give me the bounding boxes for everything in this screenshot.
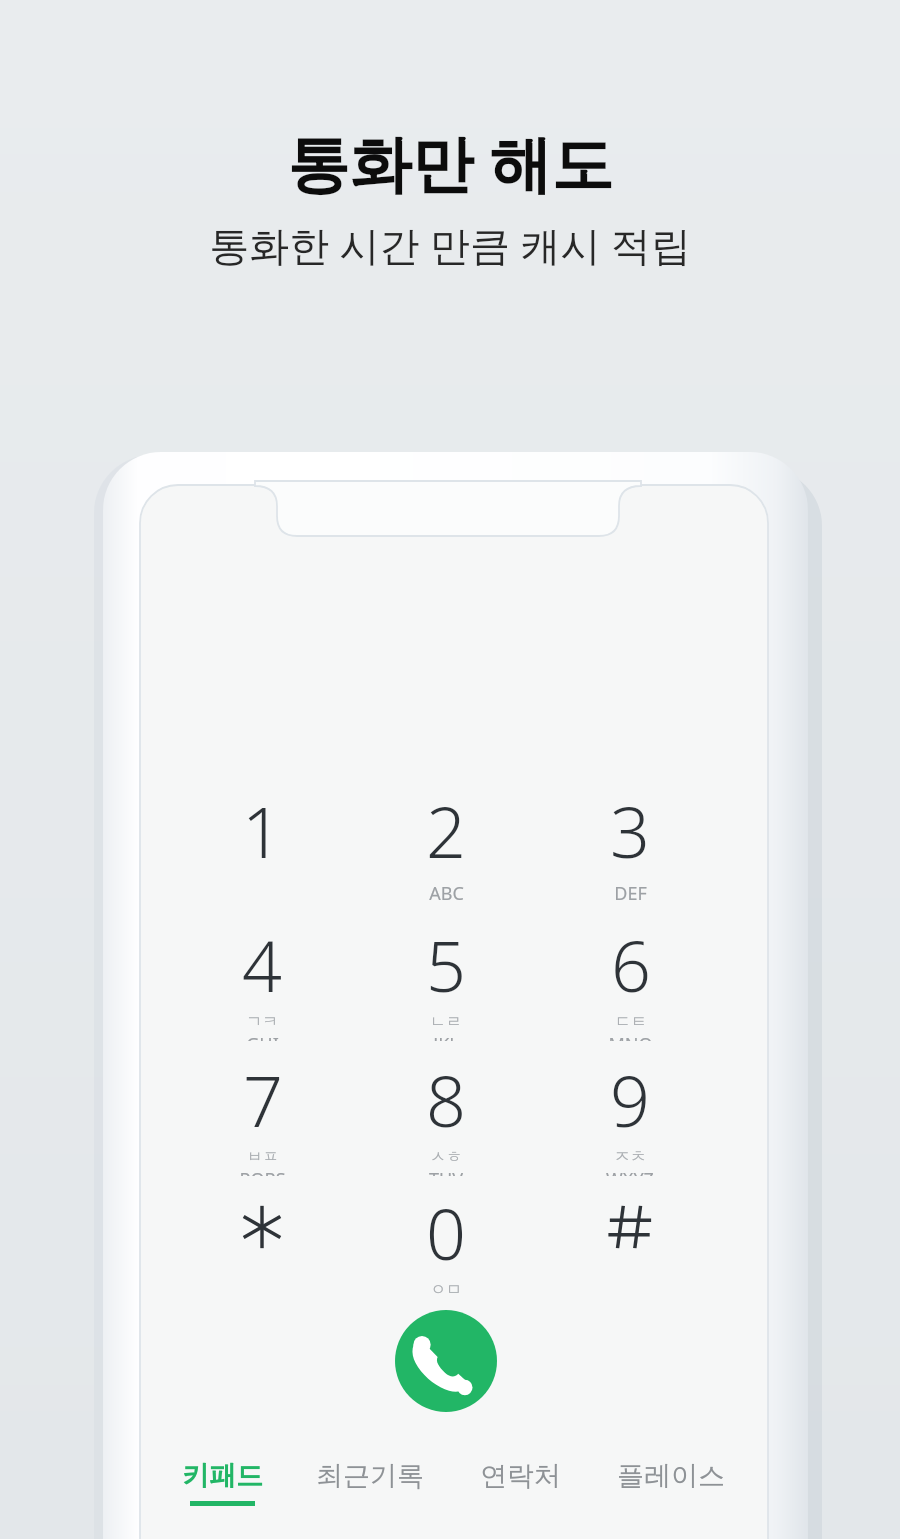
staticText: 0 [426, 1185, 466, 1280]
staticText: GHI [246, 1032, 279, 1041]
button[interactable]: 5 [371, 917, 521, 1041]
staticText: ㅂㅍ [247, 1147, 279, 1167]
staticText: 2 [426, 783, 466, 878]
staticText: 7 [243, 1052, 283, 1147]
staticText: 연락처 [480, 1459, 561, 1493]
button[interactable] [555, 1185, 705, 1309]
staticText: ㄷㅌ [615, 1012, 647, 1032]
staticText: 6 [611, 917, 651, 1012]
button[interactable]: Call with VoLTE [395, 1310, 497, 1412]
button[interactable]: 1 [187, 783, 337, 907]
staticText: 4 [242, 917, 282, 1012]
button[interactable]: 키패드 [148, 1459, 296, 1537]
button[interactable]: 연락처 [446, 1459, 594, 1537]
button[interactable]: 0 [371, 1185, 521, 1309]
staticText: 8 [426, 1052, 466, 1147]
button[interactable]: 9 [555, 1052, 705, 1176]
staticText: 1 [242, 783, 282, 878]
staticText: ABC [429, 881, 464, 906]
staticText: ㅇㅁ [430, 1280, 462, 1300]
staticText: 9 [610, 1052, 650, 1147]
staticText: ㅈㅊ [614, 1147, 646, 1167]
staticText: 통화만 해도 [287, 120, 614, 205]
staticText: 플레이스 [617, 1459, 725, 1493]
staticText: 3 [610, 783, 650, 878]
staticText: 5 [426, 917, 466, 1012]
staticText: 키패드 [182, 1459, 263, 1493]
button[interactable]: 플레이스 [597, 1459, 745, 1537]
staticText: ㅅㅎ [430, 1147, 462, 1167]
staticText: 최근기록 [316, 1459, 424, 1493]
button[interactable]: 8 [371, 1052, 521, 1176]
staticText: DEF [614, 881, 647, 906]
staticText: PQRS [239, 1167, 286, 1176]
button[interactable]: 6 [555, 917, 705, 1041]
button[interactable]: 최근기록 [296, 1459, 444, 1537]
button[interactable]: 2 [371, 783, 521, 907]
button[interactable]: 7 [187, 1052, 337, 1176]
staticText: MNO [608, 1032, 653, 1041]
button[interactable]: 4 [187, 917, 337, 1041]
staticText: TUV [429, 1167, 463, 1176]
staticText: JKL [433, 1032, 459, 1041]
button[interactable]: 3 [555, 783, 705, 907]
staticText: 통화한 시간 만큼 캐시 적립 [209, 217, 691, 272]
staticText: ㄴㄹ [430, 1012, 462, 1032]
button[interactable] [187, 1185, 337, 1309]
staticText: WXYZ [606, 1167, 654, 1176]
staticText: ㄱㅋ [246, 1012, 278, 1032]
